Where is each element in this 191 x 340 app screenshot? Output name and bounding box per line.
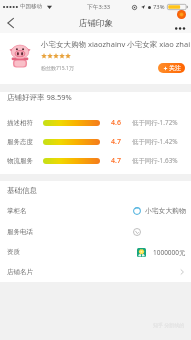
staticText: 店铺名片 xyxy=(7,268,33,276)
staticText: 资质 xyxy=(7,248,20,256)
staticText: 73% xyxy=(153,3,165,11)
staticText: 小宅女大购物 xyxy=(145,206,186,215)
staticText: 基础信息 xyxy=(7,186,37,195)
button[interactable]: 服务电话 xyxy=(0,221,191,242)
staticText: 中国移动 xyxy=(20,3,42,10)
staticText: 店铺好评率 98.59% xyxy=(7,92,72,102)
staticText: 服务态度 xyxy=(7,138,33,146)
staticText: 知乎 分割线的 xyxy=(153,322,185,329)
staticText: 关注 xyxy=(169,64,181,72)
staticText: 店铺印象 xyxy=(79,18,113,29)
staticText: 低于同行-1.63% xyxy=(132,156,178,165)
staticText: 下午3:33 xyxy=(87,3,111,11)
staticText: 4.6 xyxy=(111,118,121,128)
staticText: 4.7 xyxy=(111,156,121,166)
button[interactable]: 资质 xyxy=(0,242,191,262)
button[interactable]: 掌柜名 xyxy=(0,200,191,221)
button[interactable]: 店铺名片 xyxy=(0,262,191,282)
staticText: 物流服务 xyxy=(7,157,33,165)
staticText: 服务电话 xyxy=(7,228,33,236)
staticText: 4.7 xyxy=(111,137,121,147)
button[interactable]: More options xyxy=(173,24,187,32)
staticText: 低于同行-1.72% xyxy=(132,118,178,127)
button[interactable]: Back xyxy=(0,13,20,33)
button[interactable]: App badge xyxy=(177,10,186,19)
staticText: 粉丝数715.1万 xyxy=(41,65,74,72)
button[interactable]: 关注 xyxy=(158,63,185,73)
staticText: 描述相符 xyxy=(7,119,33,127)
staticText: 1000000元 xyxy=(153,248,186,257)
staticText: 小宅女大购物 xiaozhainv 小宅女家 xiao zhai xyxy=(41,39,191,49)
staticText: 掌柜名 xyxy=(7,207,27,215)
staticText: 低于同行-1.42% xyxy=(132,137,178,146)
